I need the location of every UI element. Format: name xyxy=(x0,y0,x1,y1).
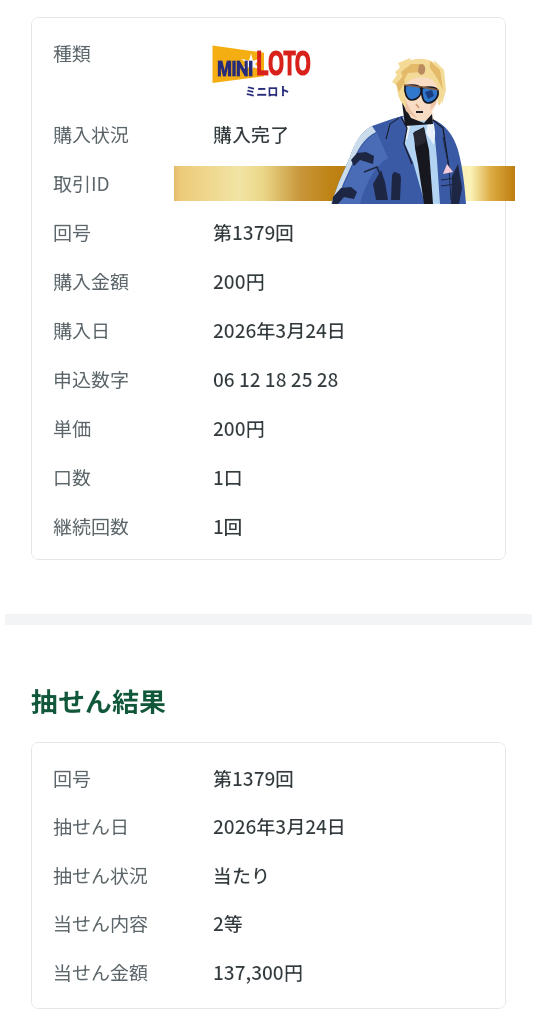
button[interactable]: 当せん内容 xyxy=(53,909,149,937)
button[interactable]: 抽せん日 xyxy=(53,812,130,840)
staticText: 当せん金額 xyxy=(53,958,149,986)
staticText: 1回 xyxy=(213,512,243,540)
staticText: 種類 xyxy=(53,39,92,67)
button[interactable]: 取引ID xyxy=(53,169,110,197)
staticText: 購入完了 xyxy=(213,120,290,148)
button[interactable]: 申込数字 xyxy=(53,365,130,393)
staticText: 当せん内容 xyxy=(53,909,149,937)
staticText: 06 12 18 25 28 xyxy=(213,365,339,393)
staticText: 第1379回 xyxy=(213,218,295,246)
button[interactable]: 抽せん状況 xyxy=(53,861,149,889)
staticText: 継続回数 xyxy=(53,512,130,540)
staticText: 購入状況 xyxy=(53,120,130,148)
staticText: 口数 xyxy=(53,463,92,491)
staticText: 2026年3月24日 xyxy=(213,812,346,840)
button[interactable]: 単価 xyxy=(53,414,92,442)
staticText: 2026年3月24日 xyxy=(213,316,346,344)
staticText: LOTO xyxy=(256,39,311,86)
button[interactable]: 当せん金額 xyxy=(53,958,149,986)
staticText: ミニロト xyxy=(245,82,291,99)
button[interactable]: 回号 xyxy=(53,218,92,246)
staticText: 回号 xyxy=(53,218,92,246)
staticText: 申込数字 xyxy=(53,365,130,393)
staticText: 1口 xyxy=(213,463,243,491)
button[interactable]: 購入日 xyxy=(53,316,111,344)
button[interactable]: 購入金額 xyxy=(53,267,130,295)
staticText: 第1379回 xyxy=(213,764,295,792)
button[interactable]: 購入状況 xyxy=(53,120,130,148)
staticText: 200円 xyxy=(213,414,265,442)
button[interactable]: 口数 xyxy=(53,463,92,491)
button[interactable]: 回号 xyxy=(53,764,92,792)
button[interactable]: 継続回数 xyxy=(53,512,130,540)
staticText: 単価 xyxy=(53,414,92,442)
staticText: 購入金額 xyxy=(53,267,130,295)
staticText: 当たり xyxy=(213,861,271,889)
staticText: 取引ID xyxy=(53,169,110,197)
staticText: 137,300円 xyxy=(213,958,303,986)
staticText: MINI xyxy=(217,53,253,83)
staticText: 回号 xyxy=(53,764,92,792)
staticText: 購入日 xyxy=(53,316,111,344)
staticText: 200円 xyxy=(213,267,265,295)
staticText: 抽せん日 xyxy=(53,812,130,840)
staticText: 抽せん状況 xyxy=(53,861,149,889)
button[interactable]: 種類 xyxy=(53,39,92,67)
staticText: 2等 xyxy=(213,909,243,937)
staticText: 抽せん結果 xyxy=(31,681,166,720)
